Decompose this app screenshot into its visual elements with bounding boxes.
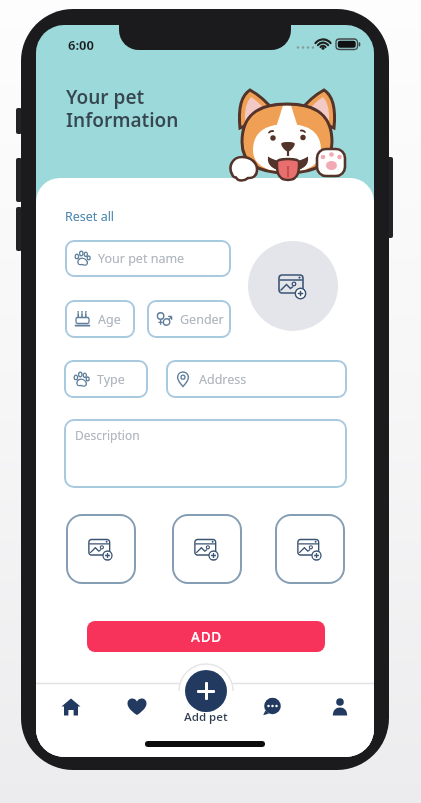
button[interactable]: ADD — [87, 621, 325, 652]
button[interactable]: Gender — [147, 300, 231, 338]
button[interactable]: Reset all — [65, 208, 115, 225]
button[interactable]: Age — [65, 300, 135, 338]
button[interactable] — [66, 514, 136, 584]
button[interactable]: Address — [166, 360, 347, 398]
staticText: Age — [98, 311, 121, 328]
button[interactable]: Description — [64, 419, 347, 488]
button[interactable] — [118, 688, 156, 726]
staticText: Gender — [180, 311, 224, 328]
button[interactable] — [185, 670, 227, 712]
button[interactable]: Type — [64, 360, 148, 398]
staticText: Your pet name — [98, 250, 185, 267]
button[interactable] — [275, 514, 345, 584]
staticText: Type — [97, 371, 125, 388]
staticText: Description — [75, 427, 140, 443]
staticText: Add pet — [184, 709, 228, 725]
button[interactable]: Your pet name — [65, 240, 231, 277]
button[interactable] — [52, 688, 90, 726]
button[interactable] — [321, 688, 359, 726]
button[interactable] — [253, 688, 291, 726]
button[interactable]: Add pet — [166, 709, 246, 725]
staticText: Your pet Information — [66, 84, 179, 133]
staticText: Address — [199, 371, 247, 388]
button[interactable] — [172, 514, 242, 584]
button[interactable] — [248, 241, 338, 331]
staticText: ADD — [191, 628, 222, 646]
staticText: 6:00 — [68, 36, 94, 54]
